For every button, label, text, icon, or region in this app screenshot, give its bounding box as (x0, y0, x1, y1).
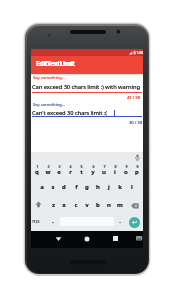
button[interactable] (131, 203, 139, 209)
staticText: b (96, 201, 100, 209)
staticText: , (52, 217, 54, 225)
staticText: 7 (103, 164, 106, 169)
staticText: s (51, 183, 55, 191)
staticText: e (57, 168, 61, 176)
staticText: 3 (58, 164, 61, 169)
staticText: 3 (58, 164, 61, 169)
staticText: h (96, 183, 100, 191)
staticText: b (96, 201, 100, 209)
staticText: Say something... (33, 102, 66, 108)
staticText: a (40, 183, 44, 191)
staticText: 8 (114, 164, 117, 169)
staticText: ?123 (32, 219, 40, 224)
staticText: 1:38 (103, 50, 143, 55)
button[interactable] (55, 236, 62, 242)
staticText: d (62, 183, 66, 191)
staticText: k (118, 183, 122, 191)
staticText: 6 (92, 164, 95, 169)
button[interactable] (35, 201, 42, 208)
staticText: 30 / 30 (102, 119, 142, 125)
staticText: m (117, 201, 123, 209)
staticText: 1 (36, 164, 39, 169)
staticText: e (57, 168, 61, 176)
staticText: Can exceed 30 chars limit :) with warnin… (32, 83, 141, 91)
staticText: Say something... (33, 75, 66, 81)
staticText: Say something... (33, 102, 66, 108)
staticText: i (114, 168, 116, 176)
staticText: j (108, 183, 110, 191)
staticText: r (69, 168, 72, 176)
staticText: ?123 (32, 219, 40, 224)
staticText: k (118, 183, 122, 191)
staticText: t (80, 168, 83, 176)
staticText: g (85, 183, 89, 191)
staticText: u (102, 168, 106, 176)
staticText: o (124, 168, 128, 176)
staticText: z (52, 201, 55, 209)
staticText: 8 (114, 164, 117, 169)
staticText: . (119, 217, 121, 225)
staticText: j (108, 183, 110, 191)
staticText: Can exceed 30 chars limit :) with warnin… (32, 83, 141, 91)
staticText: w (45, 168, 51, 176)
staticText: 9 (125, 164, 128, 169)
button[interactable] (129, 217, 140, 228)
staticText: 6 (92, 164, 95, 169)
button[interactable]: EditTextLimit (31, 56, 143, 74)
staticText: 5 (80, 164, 83, 169)
staticText: r (69, 168, 72, 176)
staticText: c (74, 201, 78, 209)
staticText: p (135, 168, 139, 176)
staticText: 4 (69, 164, 72, 169)
staticText: u (102, 168, 106, 176)
staticText: n (107, 201, 111, 209)
staticText: 5 (80, 164, 83, 169)
staticText: v (85, 201, 89, 209)
staticText: Say something... (33, 75, 66, 81)
staticText: x (62, 201, 66, 209)
staticText: l (131, 183, 133, 191)
staticText: 0 (136, 164, 139, 169)
staticText: m (117, 201, 123, 209)
staticText: x (62, 201, 66, 209)
staticText: s (51, 183, 55, 191)
staticText: 41 / 30 (100, 94, 140, 100)
staticText: w (45, 168, 51, 176)
staticText: 2 (47, 164, 50, 169)
button[interactable] (136, 236, 142, 241)
button[interactable] (134, 154, 141, 161)
staticText: q (35, 168, 39, 176)
staticText: h (96, 183, 100, 191)
staticText: Can't exceed 30 chars limit :( (32, 109, 107, 117)
staticText: f (75, 183, 78, 191)
staticText: c (74, 201, 78, 209)
staticText: 41 / 30 (100, 94, 140, 100)
staticText: i (114, 168, 116, 176)
staticText: z (52, 201, 55, 209)
staticText: EditTextLimit (36, 59, 75, 68)
staticText: p (135, 168, 139, 176)
staticText: n (107, 201, 111, 209)
staticText: y (91, 168, 95, 176)
staticText: t (80, 168, 83, 176)
staticText: y (91, 168, 95, 176)
staticText: 1:38 (103, 50, 143, 55)
staticText: 2 (47, 164, 50, 169)
staticText: d (62, 183, 66, 191)
staticText: o (124, 168, 128, 176)
staticText: l (131, 183, 133, 191)
staticText: . (119, 217, 121, 225)
staticText: q (35, 168, 39, 176)
staticText: v (85, 201, 89, 209)
staticText: 30 / 30 (102, 119, 142, 125)
staticText: EditTextLimit (36, 59, 75, 68)
staticText: 1 (36, 164, 39, 169)
staticText: 0 (136, 164, 139, 169)
staticText: f (75, 183, 78, 191)
staticText: a (40, 183, 44, 191)
button[interactable] (84, 236, 90, 242)
staticText: 7 (103, 164, 106, 169)
staticText: g (85, 183, 89, 191)
